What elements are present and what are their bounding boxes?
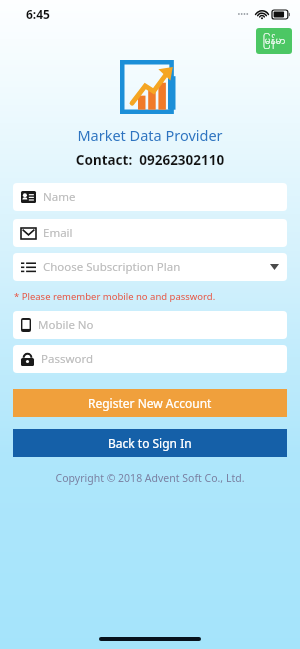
button[interactable]: Switch language to Myanmar (256, 28, 292, 54)
staticText: Mobile No (38, 317, 279, 333)
button[interactable]: Mobile No (13, 311, 287, 339)
staticText: Choose Subscription Plan (43, 259, 270, 275)
staticText: Contact: 09262302110 (0, 151, 300, 169)
staticText: Password (41, 351, 279, 367)
staticText: Market Data Provider (0, 125, 300, 145)
staticText: မြန်မာ (263, 34, 286, 49)
staticText: Register New Account (88, 395, 212, 411)
staticText: Email (43, 225, 279, 241)
button[interactable]: Choose Subscription Plan (13, 253, 287, 281)
staticText: Name (43, 189, 279, 205)
button[interactable]: Back to Sign In (13, 429, 287, 457)
button[interactable]: Password (13, 345, 287, 373)
button[interactable]: Email (13, 219, 287, 247)
staticText: * Please remember mobile no and password… (14, 290, 216, 303)
staticText: 6:45 (26, 6, 50, 22)
staticText: Back to Sign In (108, 435, 192, 451)
button[interactable]: Name (13, 183, 287, 211)
staticText: Copyright © 2018 Advent Soft Co., Ltd. (0, 471, 300, 485)
button[interactable]: Register New Account (13, 389, 287, 417)
